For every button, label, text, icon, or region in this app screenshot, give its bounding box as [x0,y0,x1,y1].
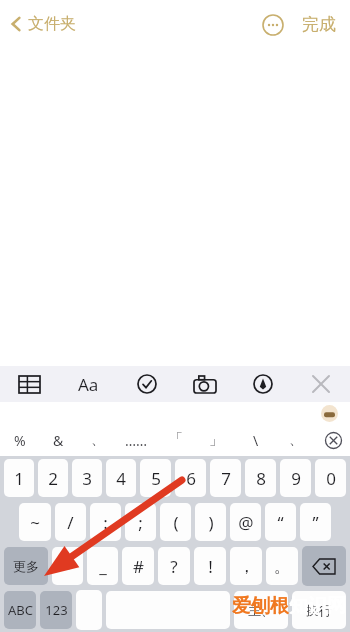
button[interactable]: 7 [210,459,241,497]
button[interactable]: …… [117,424,156,456]
staticText: _ [99,555,107,578]
staticText: # [133,555,144,578]
button[interactable]: ) [195,503,226,541]
button[interactable]: - [52,547,83,585]
staticText: 更多 [13,558,39,574]
button[interactable]: 更多 [4,547,48,585]
staticText: - [65,555,71,578]
staticText: ， [238,556,255,577]
button[interactable]: Markup [234,366,292,402]
button[interactable]: % [0,424,39,456]
button[interactable]: ; [125,503,156,541]
button[interactable]: 5 [140,459,171,497]
button[interactable]: Table [0,366,59,402]
staticText: 主、 [248,602,274,618]
button[interactable]: 文件夹 [6,8,80,40]
staticText: @ [238,511,254,534]
button[interactable]: & [39,424,78,456]
staticText: 文件夹 [28,14,76,34]
staticText: 、 [289,431,303,449]
button[interactable]: \ [236,424,276,456]
staticText: ? [170,555,178,578]
staticText: ~ [30,511,40,534]
button[interactable]: 0 [315,459,346,497]
button[interactable]: Emoji [76,590,102,630]
staticText: ABC [8,601,33,619]
staticText: 。 [274,556,291,577]
button[interactable]: Close [292,366,350,402]
button[interactable]: ? [158,547,190,585]
button[interactable]: ! [194,547,226,585]
staticText: 「 [169,431,183,449]
button[interactable]: ~ [19,503,51,541]
staticText: 知识网 [289,594,346,618]
staticText: ” [312,511,319,534]
staticText: 7 [221,467,231,490]
button[interactable]: ” [300,503,331,541]
button[interactable]: “ [265,503,296,541]
button[interactable]: 6 [175,459,206,497]
staticText: & [53,431,64,450]
button[interactable]: 。 [266,547,298,585]
staticText: 3 [82,467,92,490]
staticText: : [103,511,108,534]
staticText: 5 [151,467,161,490]
staticText: 换行 [306,602,332,618]
button[interactable]: 123 [40,591,72,629]
button[interactable]: 2 [38,459,68,497]
staticText: 1 [14,467,24,490]
staticText: % [14,431,26,450]
staticText: 2 [48,467,58,490]
staticText: “ [277,511,284,534]
staticText: 、 [91,431,105,449]
button[interactable]: 4 [106,459,136,497]
staticText: …… [125,431,148,450]
button[interactable]: 」 [196,424,236,456]
staticText: 9 [291,467,301,490]
staticText: \ [253,431,259,450]
staticText: ) [208,511,214,534]
staticText: 123 [45,601,68,619]
button[interactable]: Checklist [118,366,176,402]
button[interactable]: 8 [245,459,276,497]
button[interactable]: 3 [72,459,102,497]
staticText: ( [173,511,179,534]
button[interactable]: Sticker [321,405,338,422]
staticText: / [67,511,74,534]
button[interactable]: Clear [316,424,350,456]
button[interactable]: 、 [276,424,316,456]
button[interactable]: 9 [280,459,311,497]
button[interactable]: 1 [4,459,34,497]
staticText: 4 [116,467,126,490]
staticText: 完成 [302,14,336,35]
button[interactable]: ， [230,547,262,585]
button[interactable]: 主、 [234,591,288,629]
button[interactable]: 「 [156,424,196,456]
staticText: ! [208,555,213,578]
staticText: 8 [256,467,266,490]
staticText: 爱刨根 [232,594,289,618]
button[interactable]: @ [230,503,261,541]
button[interactable]: 、 [78,424,117,456]
button[interactable]: : [90,503,121,541]
button[interactable]: 完成 [298,8,340,41]
staticText: Aa [78,373,99,396]
staticText: ; [138,511,143,534]
staticText: 6 [186,467,196,490]
button[interactable]: # [122,547,154,585]
button[interactable]: _ [87,547,118,585]
button[interactable]: 换行 [292,591,346,629]
button[interactable]: Backspace [302,546,346,586]
button[interactable]: ABC [4,591,36,629]
button[interactable]: Text format [59,366,118,402]
button[interactable]: Camera [176,366,234,402]
staticText: 」 [209,431,223,449]
button[interactable]: ( [160,503,191,541]
staticText: 0 [326,467,336,490]
button[interactable]: / [55,503,86,541]
button[interactable]: More options [258,10,288,40]
